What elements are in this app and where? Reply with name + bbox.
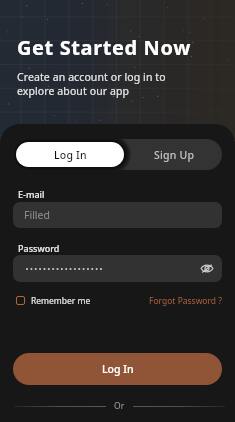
staticText: Forgot Password ? xyxy=(149,295,222,306)
button[interactable]: Log In xyxy=(13,353,222,385)
staticText: E-mail xyxy=(18,188,45,200)
button[interactable]: Remember me xyxy=(16,295,91,306)
staticText: Password xyxy=(18,242,60,254)
staticText: Get Started Now xyxy=(17,34,191,61)
button[interactable]: Sign Up xyxy=(124,142,219,167)
button[interactable]: Show password xyxy=(13,255,222,282)
staticText: Remember me xyxy=(31,295,91,306)
staticText: Or xyxy=(114,400,125,412)
staticText: Log In xyxy=(102,362,134,376)
button[interactable]: Filled xyxy=(13,202,222,228)
staticText: Sign Up xyxy=(154,148,195,162)
button[interactable]: Log In xyxy=(16,142,124,167)
staticText: Create an account or log in to explore a… xyxy=(17,70,166,98)
staticText: Filled xyxy=(24,208,50,222)
button[interactable]: Forgot Password ? xyxy=(149,295,222,306)
button[interactable]: Show password xyxy=(200,262,214,275)
staticText: Log In xyxy=(54,148,87,162)
